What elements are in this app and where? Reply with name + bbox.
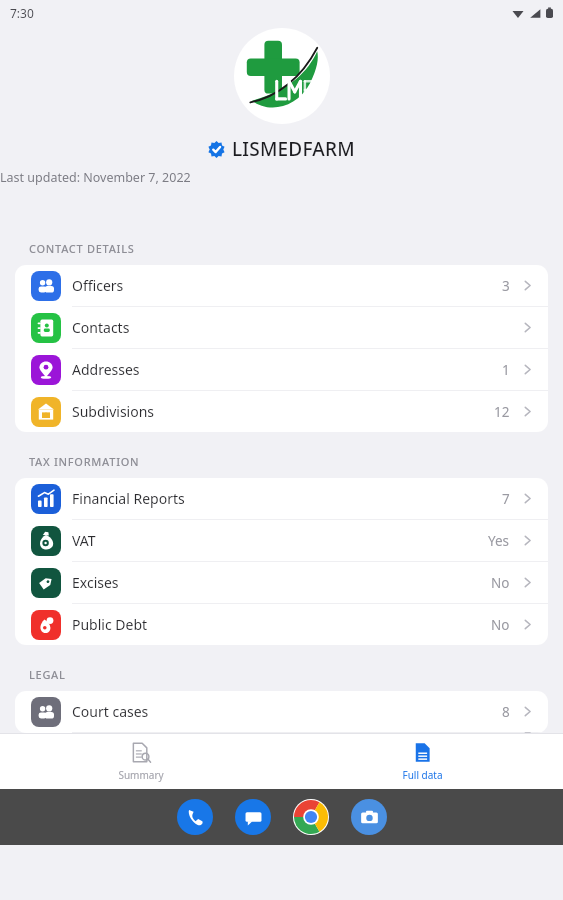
button[interactable]: Excises: [15, 562, 548, 603]
staticText: Summary: [118, 768, 164, 782]
staticText: Yes: [488, 532, 510, 550]
staticText: 12: [494, 403, 510, 421]
button[interactable]: Court cases: [15, 691, 548, 732]
staticText: Financial Reports: [72, 489, 185, 508]
staticText: CONTACT DETAILS: [29, 241, 135, 256]
staticText: LEGAL: [29, 667, 66, 682]
staticText: Court cases: [72, 702, 149, 721]
staticText: Last updated: November 7, 2022: [0, 169, 563, 186]
button[interactable]: Full data: [281, 734, 563, 789]
staticText: Excises: [72, 573, 119, 592]
button[interactable]: Financial Reports: [15, 478, 548, 519]
button[interactable]: Summary: [0, 734, 281, 789]
staticText: LISMEDFARM: [232, 136, 355, 162]
button[interactable]: Addresses: [15, 349, 548, 390]
staticText: Subdivisions: [72, 402, 155, 421]
staticText: 8: [502, 703, 510, 721]
button[interactable]: Camera: [351, 799, 387, 835]
staticText: Public Debt: [72, 615, 148, 634]
staticText: No: [491, 574, 510, 592]
button[interactable]: Messages: [235, 799, 271, 835]
staticText: 3: [502, 277, 510, 295]
staticText: Full data: [402, 768, 443, 782]
staticText: TAX INFORMATION: [29, 454, 140, 469]
staticText: VAT: [72, 531, 96, 550]
button[interactable]: Phone: [177, 799, 213, 835]
staticText: No: [491, 616, 510, 634]
button[interactable]: Contacts: [15, 307, 548, 348]
staticText: Addresses: [72, 360, 140, 379]
button[interactable]: Subdivisions: [15, 391, 548, 432]
staticText: Contacts: [72, 318, 130, 337]
button[interactable]: VAT: [15, 520, 548, 561]
staticText: Officers: [72, 276, 124, 295]
staticText: 7:30: [10, 5, 34, 21]
button[interactable]: Officers: [15, 265, 548, 306]
staticText: 7: [502, 490, 510, 508]
button[interactable]: Chrome: [293, 799, 329, 835]
button[interactable]: Public Debt: [15, 604, 548, 645]
staticText: 1: [502, 361, 510, 379]
